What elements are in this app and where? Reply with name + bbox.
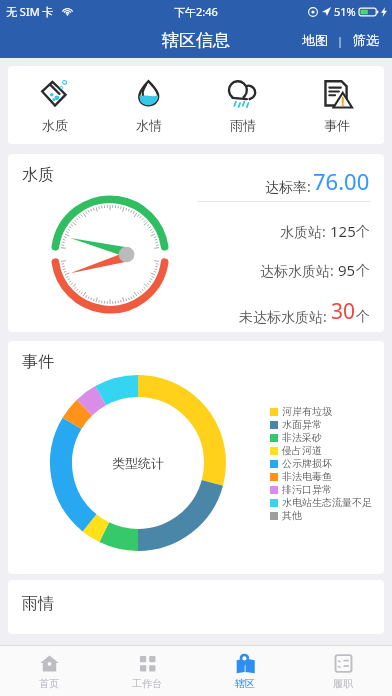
staticText: 水质 xyxy=(42,117,68,133)
button[interactable]: 首页 xyxy=(0,646,98,696)
button[interactable]: 辖区 xyxy=(196,646,294,696)
staticText: 辖区信息 xyxy=(162,30,230,51)
staticText: 无 SIM 卡 xyxy=(6,4,54,19)
staticText: 雨情 xyxy=(22,594,54,614)
staticText: 水面异常 xyxy=(282,418,322,431)
staticText: 工作台 xyxy=(132,677,162,690)
button[interactable]: 事件 xyxy=(290,66,384,144)
staticText: 辖区 xyxy=(235,677,255,690)
other: 辖区 xyxy=(235,653,256,674)
staticText: 个 xyxy=(356,262,370,280)
staticText: 水质站: xyxy=(280,222,330,241)
staticText: 侵占河道 xyxy=(282,444,322,457)
staticText: 事件 xyxy=(22,352,54,372)
staticText: 95 xyxy=(338,260,356,280)
button[interactable]: 地图 xyxy=(299,29,331,51)
other: 首页 xyxy=(39,653,60,674)
staticText: 达标率: xyxy=(265,177,311,196)
staticText: 51% xyxy=(334,4,356,19)
staticText: 水电站生态流量不足 xyxy=(282,496,372,509)
button[interactable]: 雨情 xyxy=(196,66,290,144)
staticText: 其他 xyxy=(282,509,302,522)
staticText: 非法采砂 xyxy=(282,431,322,444)
staticText: 公示牌损坏 xyxy=(282,457,332,470)
staticText: 水情 xyxy=(136,117,162,133)
staticText: 125 xyxy=(330,221,356,241)
staticText: | xyxy=(337,33,344,48)
button[interactable]: 筛选 xyxy=(350,29,382,51)
button[interactable]: 水情 xyxy=(102,66,196,144)
button[interactable]: 水质 xyxy=(8,66,102,144)
staticText: 首页 xyxy=(39,677,59,690)
staticText: 水质 xyxy=(22,165,54,185)
staticText: 雨情 xyxy=(230,117,256,133)
button[interactable]: 履职 xyxy=(294,646,392,696)
staticText: 达标水质站: xyxy=(260,261,338,280)
staticText: 76.00 xyxy=(313,166,370,196)
staticText: 个 xyxy=(356,308,370,326)
staticText: 河岸有垃圾 xyxy=(282,405,332,418)
staticText: 未达标水质站: xyxy=(239,307,331,326)
other: 履职 xyxy=(333,653,354,674)
staticText: 排污口异常 xyxy=(282,483,332,496)
staticText: 下午2:46 xyxy=(174,4,218,19)
staticText: 30 xyxy=(331,297,356,326)
staticText: 类型统计 xyxy=(112,455,164,471)
staticText: 筛选 xyxy=(353,32,379,48)
staticText: 地图 xyxy=(302,32,328,48)
other: 工作台 xyxy=(137,653,158,674)
button[interactable]: 工作台 xyxy=(98,646,196,696)
staticText: 事件 xyxy=(324,117,350,133)
staticText: 非法电毒鱼 xyxy=(282,470,332,483)
staticText: 个 xyxy=(356,223,370,241)
staticText: 履职 xyxy=(333,677,353,690)
